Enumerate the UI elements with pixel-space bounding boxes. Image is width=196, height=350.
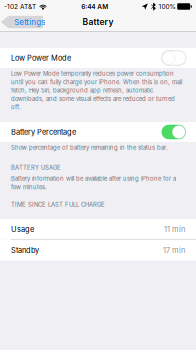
staticText: Standby (11, 246, 39, 255)
button[interactable]: Low Power Mode (0, 48, 196, 68)
staticText: 100% (158, 2, 175, 10)
staticText: Battery information will be available af… (11, 175, 176, 191)
staticText: 17 min (163, 246, 185, 255)
button[interactable]: Standby (0, 240, 196, 260)
staticText: Low Power Mode temporarily reduces power… (11, 70, 182, 111)
staticText: Battery (82, 17, 113, 27)
staticText: Usage (11, 225, 34, 234)
staticText: Low Power Mode (11, 53, 71, 62)
staticText: Show percentage of battery remaining in … (11, 144, 168, 151)
staticText: 11 min (164, 225, 185, 234)
button[interactable]: Usage (0, 219, 196, 239)
button[interactable]: Battery Percentage (0, 122, 196, 142)
staticText: BATTERY USAGE (11, 164, 61, 171)
staticText: Battery Percentage (11, 127, 76, 136)
button[interactable]: Settings (0, 16, 45, 28)
staticText: Settings (14, 17, 45, 27)
staticText: 6:44 AM (81, 2, 108, 10)
staticText: TIME SINCE LAST FULL CHARGE (11, 201, 105, 208)
staticText: -102 AT&T (4, 2, 36, 10)
